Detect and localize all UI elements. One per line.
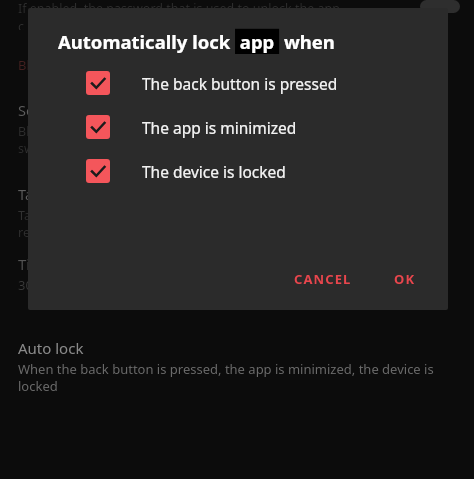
staticText: The back button is pressed [142,73,338,94]
button[interactable]: If enabled, the password that is used to… [0,0,474,30]
button[interactable]: Auto lock [0,338,474,395]
button[interactable]: Block screenshots [0,56,474,78]
staticText: Tap a password field to reveal its conte… [18,207,334,240]
staticText: The app is minimized [142,117,297,138]
staticText: c [18,18,25,30]
staticText: Blocks screenshots and hides content whe… [18,123,372,156]
staticText: Automatically lock app when [58,29,335,54]
staticText: 30 seconds [18,276,87,294]
staticText: If enabled, the password that is used to… [18,0,340,17]
staticText: OK [394,270,416,288]
button[interactable]: Tap to reveal [0,184,474,240]
staticText: Secure screen [18,100,113,120]
staticText: Block screenshots [18,56,128,74]
button[interactable]: Secure screen [0,100,474,156]
staticText: Timeout for tap to reveal [18,254,193,274]
staticText: Tap to reveal [18,184,105,204]
button[interactable]: CANCEL [282,262,364,296]
button[interactable]: The back button is pressed [28,71,448,95]
staticText: Auto lock [18,338,84,358]
staticText: When the back button is pressed, the app… [18,360,434,395]
staticText: CANCEL [294,270,352,288]
button[interactable]: Timeout for tap to reveal [0,254,474,294]
button[interactable]: The device is locked [28,159,448,183]
button[interactable]: OK [382,262,428,296]
staticText: The device is locked [142,161,286,182]
button[interactable]: The app is minimized [28,115,448,139]
